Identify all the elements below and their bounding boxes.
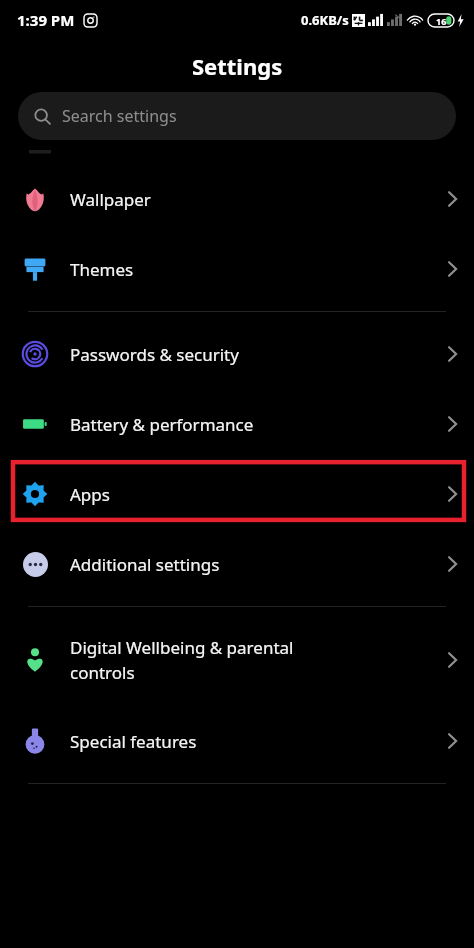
button[interactable]: Battery & performance [0,389,474,459]
other: Open [439,647,465,673]
other: Open [439,256,465,282]
button[interactable]: Wallpaper [0,164,474,234]
staticText: Special features [70,730,197,753]
button[interactable]: Apps [0,459,474,529]
staticText: Wallpaper [70,188,151,211]
staticText: controls [70,661,135,684]
other: Open [439,728,465,754]
staticText: Search settings [62,105,177,127]
staticText: 0.6KB/s [301,11,349,29]
button[interactable]: Themes [0,234,474,304]
other: Open [439,481,465,507]
staticText: 16 [436,15,447,27]
button[interactable]: Passwords & security [0,319,474,389]
staticText: Additional settings [70,553,220,576]
other: Open [439,186,465,212]
button[interactable]: Digital Wellbeing & parental [0,614,474,706]
staticText: Digital Wellbeing & parental [70,636,294,659]
staticText: Battery & performance [70,413,254,436]
other: Open [439,341,465,367]
button[interactable]: Special features [0,706,474,776]
other: Apps [21,480,49,508]
staticText: Apps [70,483,110,506]
staticText: 1:39 PM [17,10,75,30]
button[interactable]: Additional settings [0,529,474,599]
other: Open [439,551,465,577]
staticText: Themes [70,258,134,281]
button[interactable]: Search settings [18,92,456,140]
staticText: Settings [192,51,283,81]
staticText: Passwords & security [70,343,239,366]
other: Open [439,411,465,437]
